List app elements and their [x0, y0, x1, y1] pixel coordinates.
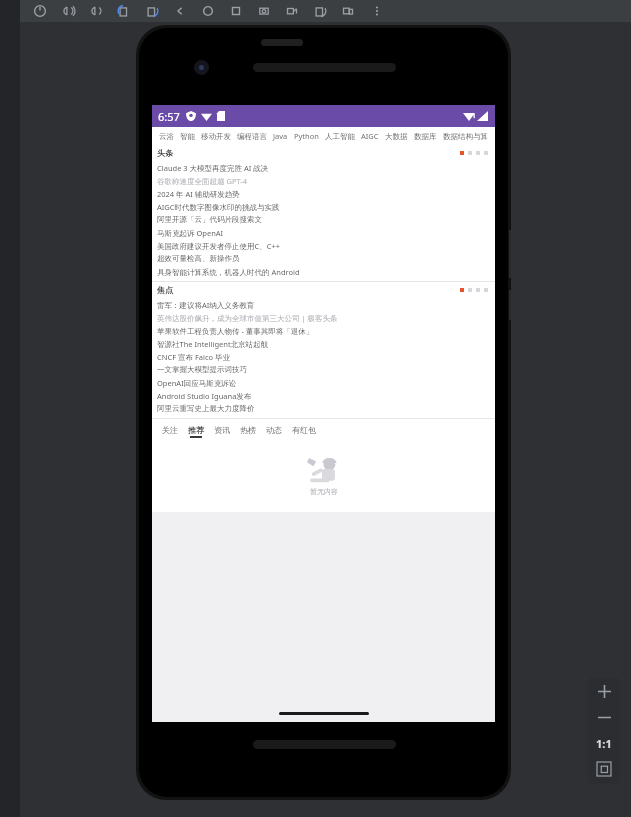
- button[interactable]: Back: [166, 0, 194, 22]
- staticText: 动态: [266, 425, 282, 435]
- button[interactable]: 2024 年 AI 辅助研发趋势: [152, 187, 495, 200]
- button[interactable]: 云浴: [156, 132, 177, 141]
- staticText: 数据库: [414, 132, 437, 141]
- staticText: 阿里开源「云」代码片段搜索文: [157, 215, 262, 224]
- button[interactable]: Record screen: [278, 0, 306, 22]
- staticText: 大数据: [385, 132, 408, 141]
- staticText: 头条: [157, 148, 173, 158]
- staticText: 暂无内容: [310, 487, 338, 496]
- button[interactable]: Android Studio Iguana发布: [152, 389, 495, 402]
- staticText: 雷军：建议将AI纳入义务教育: [157, 300, 255, 310]
- button[interactable]: 智源社The Intelligent北京站起航: [152, 337, 495, 350]
- staticText: 智源社The Intelligent北京站起航: [157, 339, 269, 349]
- button[interactable]: 数据库: [411, 132, 440, 141]
- button[interactable]: CNCF 宣布 Falco 毕业: [152, 350, 495, 363]
- button[interactable]: Volume up: [54, 0, 82, 22]
- staticText: 2024 年 AI 辅助研发趋势: [157, 189, 240, 199]
- staticText: 谷歌称速度全面超越 GPT-4: [157, 176, 248, 186]
- button[interactable]: AIGC: [358, 131, 382, 141]
- staticText: 超效可量检高、新操作员: [157, 254, 240, 263]
- staticText: 英伟达股价飙升，成为全球市值第三大公司 | 极客头条: [157, 313, 338, 323]
- button[interactable]: 雷军：建议将AI纳入义务教育: [152, 298, 495, 311]
- button[interactable]: AIGC时代数字图像水印的挑战与实践: [152, 200, 495, 213]
- button[interactable]: 关注: [157, 425, 183, 438]
- button[interactable]: 马斯克起诉 OpenAI: [152, 226, 495, 239]
- staticText: 云浴: [159, 132, 174, 141]
- button[interactable]: 推荐: [183, 425, 209, 438]
- staticText: 美国政府建议开发者停止使用C、C++: [157, 241, 281, 251]
- button[interactable]: 移动开发: [198, 132, 234, 141]
- button[interactable]: 阿里云重写史上最大力度降价: [152, 402, 495, 415]
- staticText: Python: [294, 131, 319, 141]
- staticText: 具身智能计算系统，机器人时代的 Android: [157, 267, 300, 277]
- button[interactable]: 大数据: [382, 132, 411, 141]
- button[interactable]: 阿里开源「云」代码片段搜索文: [152, 213, 495, 226]
- button[interactable]: 谷歌称速度全面超越 GPT-4: [152, 174, 495, 187]
- staticText: Java: [273, 131, 288, 141]
- staticText: 热榜: [240, 425, 256, 435]
- button[interactable]: More: [368, 2, 386, 20]
- button[interactable]: 一文掌握大模型提示词技巧: [152, 363, 495, 376]
- button[interactable]: Zoom out: [588, 704, 620, 730]
- staticText: 有红包: [292, 425, 316, 435]
- staticText: AIGC: [361, 131, 379, 141]
- button[interactable]: Python: [291, 131, 322, 141]
- button[interactable]: 编程语言: [234, 132, 270, 141]
- staticText: 数据结构与算法: [443, 132, 490, 141]
- staticText: 焦点: [157, 285, 173, 295]
- button[interactable]: Home: [194, 0, 222, 22]
- button[interactable]: OpenAI回应马斯克诉讼: [152, 376, 495, 389]
- button[interactable]: 动态: [261, 425, 287, 438]
- staticText: 智能: [180, 132, 195, 141]
- button[interactable]: 英伟达股价飙升，成为全球市值第三大公司 | 极客头条: [152, 311, 495, 324]
- button[interactable]: Overview: [222, 0, 250, 22]
- staticText: 6:57: [158, 109, 180, 124]
- button[interactable]: 热榜: [235, 425, 261, 438]
- button[interactable]: Power: [26, 0, 54, 22]
- button[interactable]: Fit to screen: [588, 756, 620, 782]
- button[interactable]: Zoom in: [588, 678, 620, 704]
- button[interactable]: Screenshot: [250, 0, 278, 22]
- button[interactable]: 苹果软件工程负责人物传 - 董事其即将「退休」: [152, 324, 495, 337]
- button[interactable]: 人工智能: [322, 132, 358, 141]
- staticText: Android Studio Iguana发布: [157, 391, 252, 401]
- button[interactable]: Virtual sensors: [334, 0, 362, 22]
- staticText: 关注: [162, 425, 178, 435]
- button[interactable]: Reset: [306, 0, 334, 22]
- button[interactable]: Rotate right: [138, 0, 166, 22]
- button[interactable]: 美国政府建议开发者停止使用C、C++: [152, 239, 495, 252]
- staticText: 移动开发: [201, 132, 231, 141]
- staticText: 资讯: [214, 425, 230, 435]
- button[interactable]: 资讯: [209, 425, 235, 438]
- staticText: 1:1: [596, 736, 612, 751]
- button[interactable]: Java: [270, 131, 291, 141]
- staticText: 推荐: [188, 425, 204, 435]
- button[interactable]: 智能: [177, 132, 198, 141]
- button[interactable]: Claude 3 大模型再度完胜 AI 战决: [152, 161, 495, 174]
- button[interactable]: 1:1: [588, 730, 620, 756]
- staticText: Claude 3 大模型再度完胜 AI 战决: [157, 163, 269, 173]
- button[interactable]: 超效可量检高、新操作员: [152, 252, 495, 265]
- button[interactable]: Volume down: [82, 0, 110, 22]
- staticText: 苹果软件工程负责人物传 - 董事其即将「退休」: [157, 326, 314, 336]
- button[interactable]: Rotate left: [110, 0, 138, 22]
- staticText: 马斯克起诉 OpenAI: [157, 228, 224, 238]
- staticText: CNCF 宣布 Falco 毕业: [157, 352, 231, 362]
- staticText: 阿里云重写史上最大力度降价: [157, 404, 255, 413]
- button[interactable]: 数据结构与算法: [440, 132, 493, 141]
- staticText: 编程语言: [237, 132, 267, 141]
- button[interactable]: 有红包: [287, 425, 321, 438]
- staticText: AIGC时代数字图像水印的挑战与实践: [157, 202, 280, 212]
- staticText: 人工智能: [325, 132, 355, 141]
- staticText: OpenAI回应马斯克诉讼: [157, 378, 237, 388]
- button[interactable]: 具身智能计算系统，机器人时代的 Android: [152, 265, 495, 278]
- staticText: 一文掌握大模型提示词技巧: [157, 365, 247, 374]
